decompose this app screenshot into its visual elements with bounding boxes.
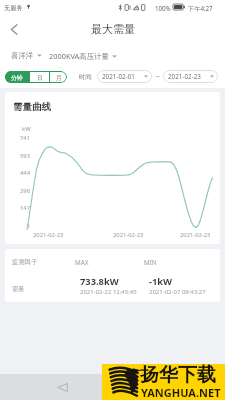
button[interactable]: 喜洋洋 [11,51,42,60]
button[interactable]: 2021-02-23 [163,70,218,83]
staticText: 月 [56,74,62,81]
staticText: 2021-02-22 12:45:45 [80,288,137,296]
staticText: kW [22,125,31,133]
button[interactable]: 日 [30,71,49,83]
button[interactable]: 分钟 [5,71,29,83]
button[interactable]: 月 [50,71,67,83]
staticText: 2021-02-23 [33,231,64,239]
button[interactable]: Back [0,14,28,44]
staticText: 最大需量 [91,22,135,36]
staticText: 分钟 [11,74,23,81]
button[interactable]: Back [53,378,72,397]
staticText: 需量曲线 [13,101,51,113]
staticText: 2000KVA高压计量 [49,51,109,61]
staticText: 2021-02-23 [180,231,211,239]
staticText: 无服务 [4,4,23,12]
staticText: MAX [75,258,89,267]
staticText: 733.8kW [80,275,119,288]
staticText: YANGHUA.NET [141,385,221,400]
staticText: 1 [27,222,31,230]
staticText: 147 [20,204,31,212]
staticText: 日 [37,74,43,81]
staticText: 扬华下载 [140,363,216,387]
staticText: 喜洋洋 [11,51,34,60]
staticText: 100% [155,4,171,12]
staticText: 时间 [79,73,92,81]
staticText: 2021-02-07 09:43:27 [149,288,206,296]
staticText: 593 [20,152,31,160]
staticText: 2021-02-23 [113,231,144,239]
staticText: 需量 [12,285,25,293]
staticText: 下午4:27 [188,4,213,12]
staticText: 296 [20,187,31,195]
staticText: 2021-02-01 [102,72,135,81]
staticText: 444 [20,169,31,177]
staticText: 741 [20,134,31,142]
staticText: MIN [144,258,157,267]
button[interactable]: 2021-02-01 [97,70,152,83]
staticText: -1kW [149,275,173,288]
staticText: ~ [156,72,160,81]
button[interactable]: 2000KVA高压计量 [49,51,117,61]
staticText: 2021-02-23 [168,72,201,81]
staticText: 监测因子 [12,258,38,266]
